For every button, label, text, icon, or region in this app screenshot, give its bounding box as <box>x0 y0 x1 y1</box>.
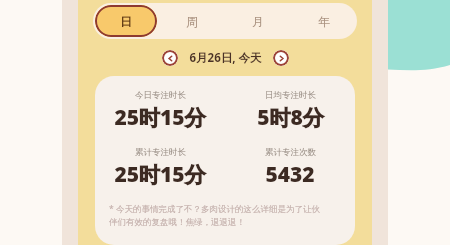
button[interactable]: 累计专注次数 <box>225 147 355 189</box>
button[interactable]: Next day <box>273 50 289 66</box>
staticText: 今日专注时长 <box>135 90 186 101</box>
button[interactable]: 今日专注时长 <box>95 90 225 132</box>
staticText: 日 <box>120 14 132 29</box>
staticText: 月 <box>252 14 264 29</box>
button[interactable]: 日 <box>95 5 157 37</box>
button[interactable]: Previous day <box>162 50 178 66</box>
staticText: 周 <box>186 14 198 29</box>
button[interactable]: 年 <box>293 5 355 37</box>
staticText: 25时15分 <box>114 160 206 189</box>
staticText: 25时15分 <box>114 103 206 132</box>
staticText: 累计专注次数 <box>265 147 316 158</box>
staticText: 5时8分 <box>257 103 324 132</box>
button[interactable]: 累计专注时长 <box>95 147 225 189</box>
staticText: * 今天的事情完成了不？多肉设计的这么详细是为了让伙 <box>109 203 320 215</box>
staticText: 伴们有效的复盘哦！焦绿，退退退！ <box>109 217 245 228</box>
button[interactable]: 月 <box>227 5 289 37</box>
staticText: 日均专注时长 <box>265 90 316 101</box>
button[interactable]: 周 <box>161 5 223 37</box>
button[interactable]: 日均专注时长 <box>225 90 355 132</box>
staticText: 6月26日, 今天 <box>189 50 262 66</box>
staticText: 累计专注时长 <box>135 147 186 158</box>
staticText: 年 <box>318 14 330 29</box>
staticText: 5432 <box>265 160 315 189</box>
